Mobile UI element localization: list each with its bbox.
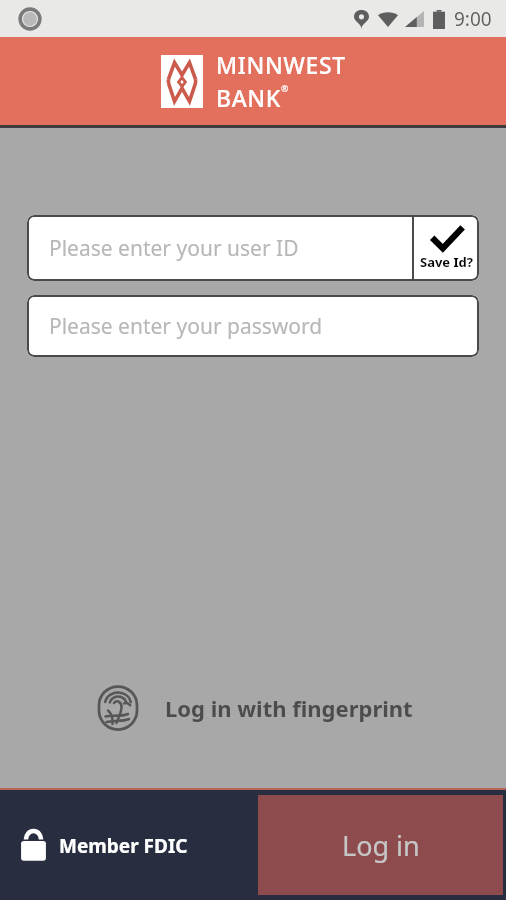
button[interactable]: Fingerprint	[73, 675, 433, 741]
button[interactable]: Member FDIC	[0, 819, 198, 872]
staticText: Log in	[342, 827, 420, 864]
staticText: 9:00	[454, 6, 492, 32]
staticText: ®	[281, 82, 289, 94]
staticText: Log in with fingerprint	[165, 693, 413, 723]
staticText: Save Id?	[420, 253, 473, 271]
other: Fingerprint	[93, 683, 143, 733]
staticText: MINNWEST	[216, 49, 346, 80]
staticText: Please enter your user ID	[49, 234, 299, 263]
staticText: BANK	[216, 82, 281, 113]
button[interactable]: Save Id?	[414, 215, 479, 281]
staticText: Member FDIC	[59, 833, 188, 859]
staticText: Please enter your password	[49, 312, 323, 341]
button[interactable]: Log in	[258, 795, 503, 895]
button[interactable]: Please enter your user ID	[27, 215, 412, 281]
button[interactable]: Please enter your password	[27, 295, 479, 357]
